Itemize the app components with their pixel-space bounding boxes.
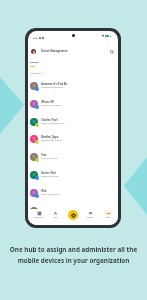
button[interactable]: Dexter iPad	[28, 166, 118, 184]
staticText: sarah.white@archer.biz	[41, 104, 63, 107]
button[interactable]: iPhone XR	[28, 95, 118, 113]
staticText: martha.fellx@collab.biz	[41, 139, 63, 142]
staticText: Charles_Pixel	[41, 118, 58, 121]
staticText: charles.h@collab.biz	[41, 193, 60, 196]
button[interactable]: Active Devices	[30, 72, 44, 74]
staticText: Annemarie's iPad Air	[41, 82, 68, 85]
staticText: mike.o@archer.biz	[41, 157, 58, 160]
button[interactable]: iPad	[28, 184, 118, 202]
staticText: iPhone XR	[41, 100, 54, 103]
staticText: 9:54	[33, 36, 38, 39]
button[interactable]: Search	[108, 48, 115, 55]
staticText: Dashboard	[34, 216, 44, 218]
button[interactable]: Martha_Oppo	[28, 130, 118, 148]
button[interactable]: Dashboard	[31, 211, 46, 223]
staticText: One hub to assign and administer all the…	[0, 245, 147, 265]
button[interactable]: More	[101, 211, 116, 223]
staticText: Users	[53, 216, 58, 218]
button[interactable]: Groups	[83, 211, 98, 223]
staticText: dexter.h@collab.biz	[41, 175, 59, 178]
staticText: Device Management	[41, 49, 68, 53]
staticText: amelia.brown@gmail.com	[41, 122, 65, 125]
button[interactable]: Devices	[30, 61, 39, 67]
staticText: jacob.whitely@collab.biz	[41, 86, 64, 89]
staticText: Dexter iPad	[41, 171, 56, 174]
staticText: Devices	[30, 61, 39, 64]
button[interactable]: Annemarie's iPad Air	[28, 77, 118, 95]
staticText: iPad	[41, 189, 47, 192]
staticText: Vivo	[41, 153, 47, 156]
button[interactable]: Vivo	[28, 148, 118, 166]
button[interactable]: Charles_Pixel	[28, 113, 118, 131]
staticText: More	[106, 216, 111, 218]
button[interactable]: Users	[48, 211, 63, 223]
staticText: Active Devices	[30, 72, 41, 74]
staticText: Martha_Oppo	[41, 135, 59, 138]
button[interactable]: Devices	[68, 210, 78, 220]
staticText: Groups	[87, 216, 94, 218]
